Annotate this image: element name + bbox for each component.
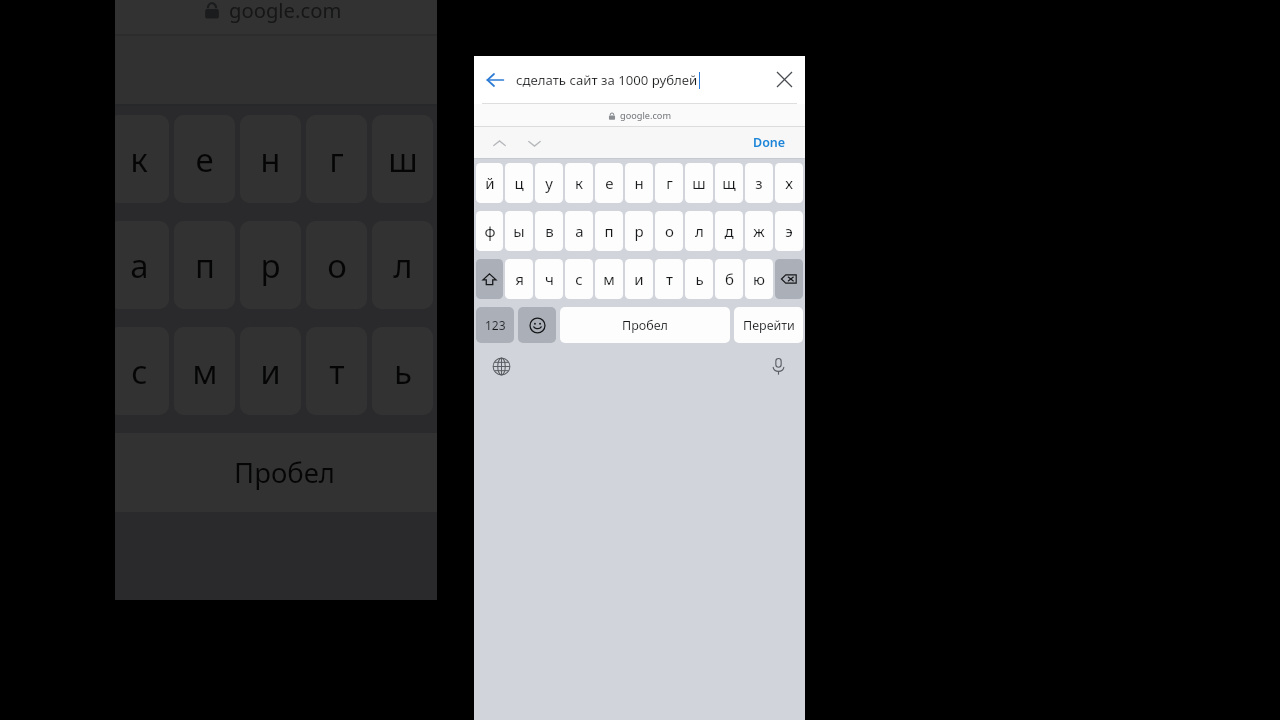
button[interactable]: Done (743, 129, 796, 156)
button[interactable]: х (570, 115, 631, 203)
button[interactable]: ф (476, 211, 503, 251)
button[interactable]: щ (438, 115, 499, 203)
button[interactable]: л (372, 221, 433, 309)
button[interactable]: п (174, 221, 235, 309)
button[interactable]: Previous field (486, 130, 512, 156)
staticText: сделать сайт за 1000 рублей (516, 71, 698, 89)
button[interactable]: а (565, 211, 593, 251)
button[interactable]: з (745, 163, 773, 203)
button[interactable]: в (535, 211, 563, 251)
staticText: л (393, 243, 413, 288)
button[interactable]: д (715, 211, 743, 251)
button[interactable]: Перейти (734, 307, 803, 343)
button[interactable]: б (438, 327, 499, 415)
staticText: п (604, 221, 614, 241)
button[interactable]: а (115, 221, 169, 309)
button[interactable]: п (595, 211, 623, 251)
staticText: б (725, 269, 734, 289)
staticText: ы (513, 221, 525, 241)
button[interactable]: ь (372, 327, 433, 415)
staticText: г (666, 173, 673, 193)
button[interactable]: е (174, 115, 235, 203)
button[interactable]: с (115, 327, 169, 415)
button[interactable]: Clear (763, 56, 805, 103)
button[interactable]: г (655, 163, 683, 203)
button[interactable]: Next field (521, 130, 547, 156)
staticText: ц (514, 173, 524, 193)
button[interactable]: с (565, 259, 593, 299)
button[interactable]: м (595, 259, 623, 299)
button[interactable]: т (655, 259, 683, 299)
staticText: з (526, 137, 543, 182)
staticText: м (192, 349, 218, 394)
button[interactable]: ц (505, 163, 533, 203)
staticText: и (634, 269, 644, 289)
staticText: п (195, 243, 215, 288)
staticText: ч (545, 269, 554, 289)
button[interactable]: ж (504, 221, 565, 309)
staticText: о (327, 243, 347, 288)
staticText: с (131, 349, 148, 394)
button[interactable]: о (655, 211, 683, 251)
button[interactable]: ы (505, 211, 533, 251)
button[interactable]: и (240, 327, 301, 415)
button[interactable]: л (685, 211, 713, 251)
staticText: т (666, 269, 673, 289)
button[interactable]: б (715, 259, 743, 299)
staticText: с (575, 269, 583, 289)
button[interactable]: ь (685, 259, 713, 299)
button[interactable]: о (306, 221, 367, 309)
button[interactable]: Пробел (115, 433, 471, 512)
button[interactable]: ю (504, 327, 565, 415)
button[interactable]: ю (745, 259, 773, 299)
staticText: я (515, 269, 524, 289)
staticText: л (695, 221, 704, 241)
staticText: а (575, 221, 584, 241)
button[interactable]: р (240, 221, 301, 309)
button[interactable]: э (570, 221, 631, 309)
button[interactable]: ш (372, 115, 433, 203)
button[interactable]: у (535, 163, 563, 203)
button[interactable]: з (504, 115, 565, 203)
button[interactable]: Voice input (753, 352, 803, 380)
button[interactable]: Back (474, 56, 516, 103)
button[interactable]: е (595, 163, 623, 203)
staticText: щ (722, 173, 736, 193)
button[interactable]: Emoji (518, 307, 556, 343)
staticText: Пробел (622, 317, 668, 334)
button[interactable]: к (565, 163, 593, 203)
button[interactable]: м (174, 327, 235, 415)
button[interactable]: й (476, 163, 503, 203)
button[interactable]: 123 (476, 307, 514, 343)
staticText: Перейти (743, 317, 795, 334)
button[interactable]: н (240, 115, 301, 203)
button[interactable]: Done (500, 41, 615, 100)
button[interactable]: Backspace (775, 259, 803, 299)
button[interactable]: ш (685, 163, 713, 203)
button[interactable]: н (625, 163, 653, 203)
staticText: ь (394, 349, 412, 394)
staticText: ь (695, 269, 704, 289)
button[interactable]: щ (715, 163, 743, 203)
button[interactable]: ж (745, 211, 773, 251)
button[interactable]: Change keyboard (476, 352, 526, 380)
button[interactable]: Backspace (570, 327, 631, 415)
button[interactable]: Пробел (560, 307, 730, 343)
button[interactable]: к (115, 115, 169, 203)
button[interactable]: и (625, 259, 653, 299)
button[interactable]: т (306, 327, 367, 415)
button[interactable]: д (438, 221, 499, 309)
button[interactable]: р (625, 211, 653, 251)
button[interactable]: я (505, 259, 533, 299)
button[interactable]: х (775, 163, 803, 203)
staticText: д (724, 221, 734, 241)
staticText: г (329, 137, 344, 182)
staticText: у (545, 173, 553, 193)
button[interactable]: э (775, 211, 803, 251)
button[interactable]: Shift (476, 259, 503, 299)
button[interactable]: г (306, 115, 367, 203)
staticText: й (485, 173, 495, 193)
button[interactable]: ч (535, 259, 563, 299)
